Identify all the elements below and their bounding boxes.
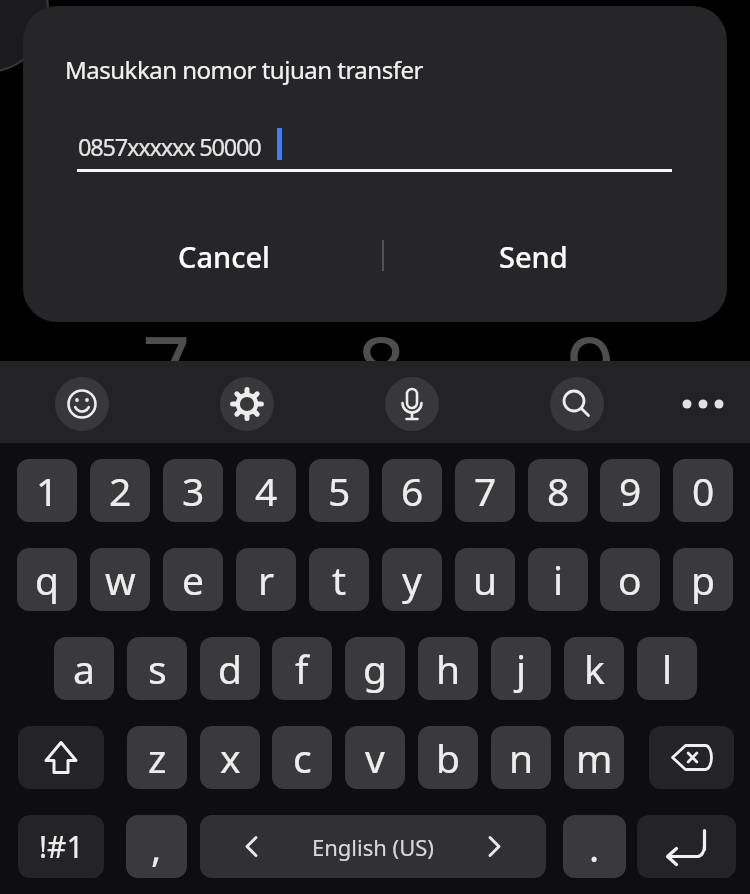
staticText: e xyxy=(182,553,204,606)
button[interactable]: e xyxy=(163,548,223,611)
staticText: n xyxy=(509,731,534,784)
button[interactable]: q xyxy=(17,548,77,611)
button[interactable]: English (US) xyxy=(200,815,546,878)
button[interactable]: g xyxy=(345,637,405,700)
staticText: g xyxy=(363,642,387,695)
button[interactable]: 5 xyxy=(309,459,369,522)
staticText: , xyxy=(151,821,162,873)
staticText: . xyxy=(589,821,600,873)
staticText: a xyxy=(73,642,95,695)
staticText: Send xyxy=(499,237,568,276)
button[interactable]: t xyxy=(309,548,369,611)
button[interactable] xyxy=(676,377,730,431)
button[interactable]: b xyxy=(418,726,478,789)
button[interactable]: z xyxy=(127,726,187,789)
staticText: t xyxy=(332,553,347,606)
button[interactable] xyxy=(385,377,439,431)
staticText: 4 xyxy=(255,464,278,517)
staticText: h xyxy=(436,642,461,695)
button[interactable]: . xyxy=(563,815,626,878)
staticText: b xyxy=(436,731,460,784)
staticText: s xyxy=(148,642,167,695)
staticText: k xyxy=(584,642,605,695)
button[interactable]: 7 xyxy=(455,459,515,522)
button[interactable]: o xyxy=(600,548,660,611)
staticText: m xyxy=(576,731,613,784)
button[interactable]: 4 xyxy=(236,459,296,522)
staticText: o xyxy=(618,553,642,606)
button[interactable]: 9 xyxy=(600,459,660,522)
staticText: Cancel xyxy=(178,237,270,276)
staticText: 5 xyxy=(328,464,351,517)
button[interactable]: s xyxy=(127,637,187,700)
staticText: q xyxy=(35,553,59,606)
staticText: u xyxy=(473,553,498,606)
button[interactable]: d xyxy=(200,637,260,700)
staticText: v xyxy=(365,731,385,784)
button[interactable]: 6 xyxy=(382,459,442,522)
staticText: English (US) xyxy=(312,832,434,862)
button[interactable]: 8 xyxy=(528,459,588,522)
button[interactable]: f xyxy=(272,637,332,700)
staticText: 6 xyxy=(401,464,424,517)
staticText: 8 xyxy=(547,464,570,517)
button[interactable]: m xyxy=(564,726,624,789)
staticText: c xyxy=(293,731,312,784)
button[interactable]: r xyxy=(236,548,296,611)
button[interactable] xyxy=(550,377,604,431)
button[interactable]: h xyxy=(418,637,478,700)
button[interactable]: 3 xyxy=(163,459,223,522)
staticText: 9 xyxy=(566,308,615,424)
staticText: 3 xyxy=(182,464,205,517)
button[interactable]: i xyxy=(528,548,588,611)
button[interactable] xyxy=(637,815,736,878)
staticText: 2 xyxy=(109,464,132,517)
staticText: r xyxy=(258,553,275,606)
button[interactable]: , xyxy=(126,815,187,878)
staticText: !#1 xyxy=(39,826,84,867)
button[interactable] xyxy=(220,377,274,431)
button[interactable]: y xyxy=(382,548,442,611)
button[interactable]: v xyxy=(345,726,405,789)
button[interactable]: Cancel xyxy=(143,220,305,292)
button[interactable]: c xyxy=(272,726,332,789)
button[interactable]: 1 xyxy=(17,459,77,522)
button[interactable]: p xyxy=(673,548,733,611)
button[interactable]: n xyxy=(491,726,551,789)
button[interactable]: j xyxy=(491,637,551,700)
staticText: w xyxy=(105,553,136,606)
button[interactable]: Send xyxy=(452,220,614,292)
button[interactable]: 0 xyxy=(673,459,733,522)
staticText: d xyxy=(218,642,242,695)
button[interactable]: l xyxy=(637,637,697,700)
staticText: y xyxy=(402,553,422,606)
button[interactable]: w xyxy=(90,548,150,611)
button[interactable]: 2 xyxy=(90,459,150,522)
button[interactable] xyxy=(18,726,104,789)
staticText: 9 xyxy=(619,464,642,517)
staticText: 7 xyxy=(474,464,497,517)
staticText: 0857xxxxxx 50000 xyxy=(78,131,261,163)
staticText: f xyxy=(295,642,309,695)
staticText: 1 xyxy=(36,464,59,517)
button[interactable] xyxy=(649,726,734,789)
staticText: i xyxy=(553,553,564,606)
button[interactable]: u xyxy=(455,548,515,611)
button[interactable]: !#1 xyxy=(18,815,104,878)
staticText: x xyxy=(220,731,241,784)
button[interactable]: k xyxy=(564,637,624,700)
staticText: z xyxy=(148,731,167,784)
staticText: 8 xyxy=(357,308,406,424)
button[interactable]: x xyxy=(200,726,260,789)
staticText: 0 xyxy=(692,464,715,517)
button[interactable] xyxy=(55,377,109,431)
button[interactable]: a xyxy=(54,637,114,700)
staticText: 7 xyxy=(142,308,191,424)
staticText: l xyxy=(662,642,673,695)
staticText: Masukkan nomor tujuan transfer xyxy=(65,53,423,86)
staticText: p xyxy=(691,553,715,606)
staticText: j xyxy=(516,642,527,695)
